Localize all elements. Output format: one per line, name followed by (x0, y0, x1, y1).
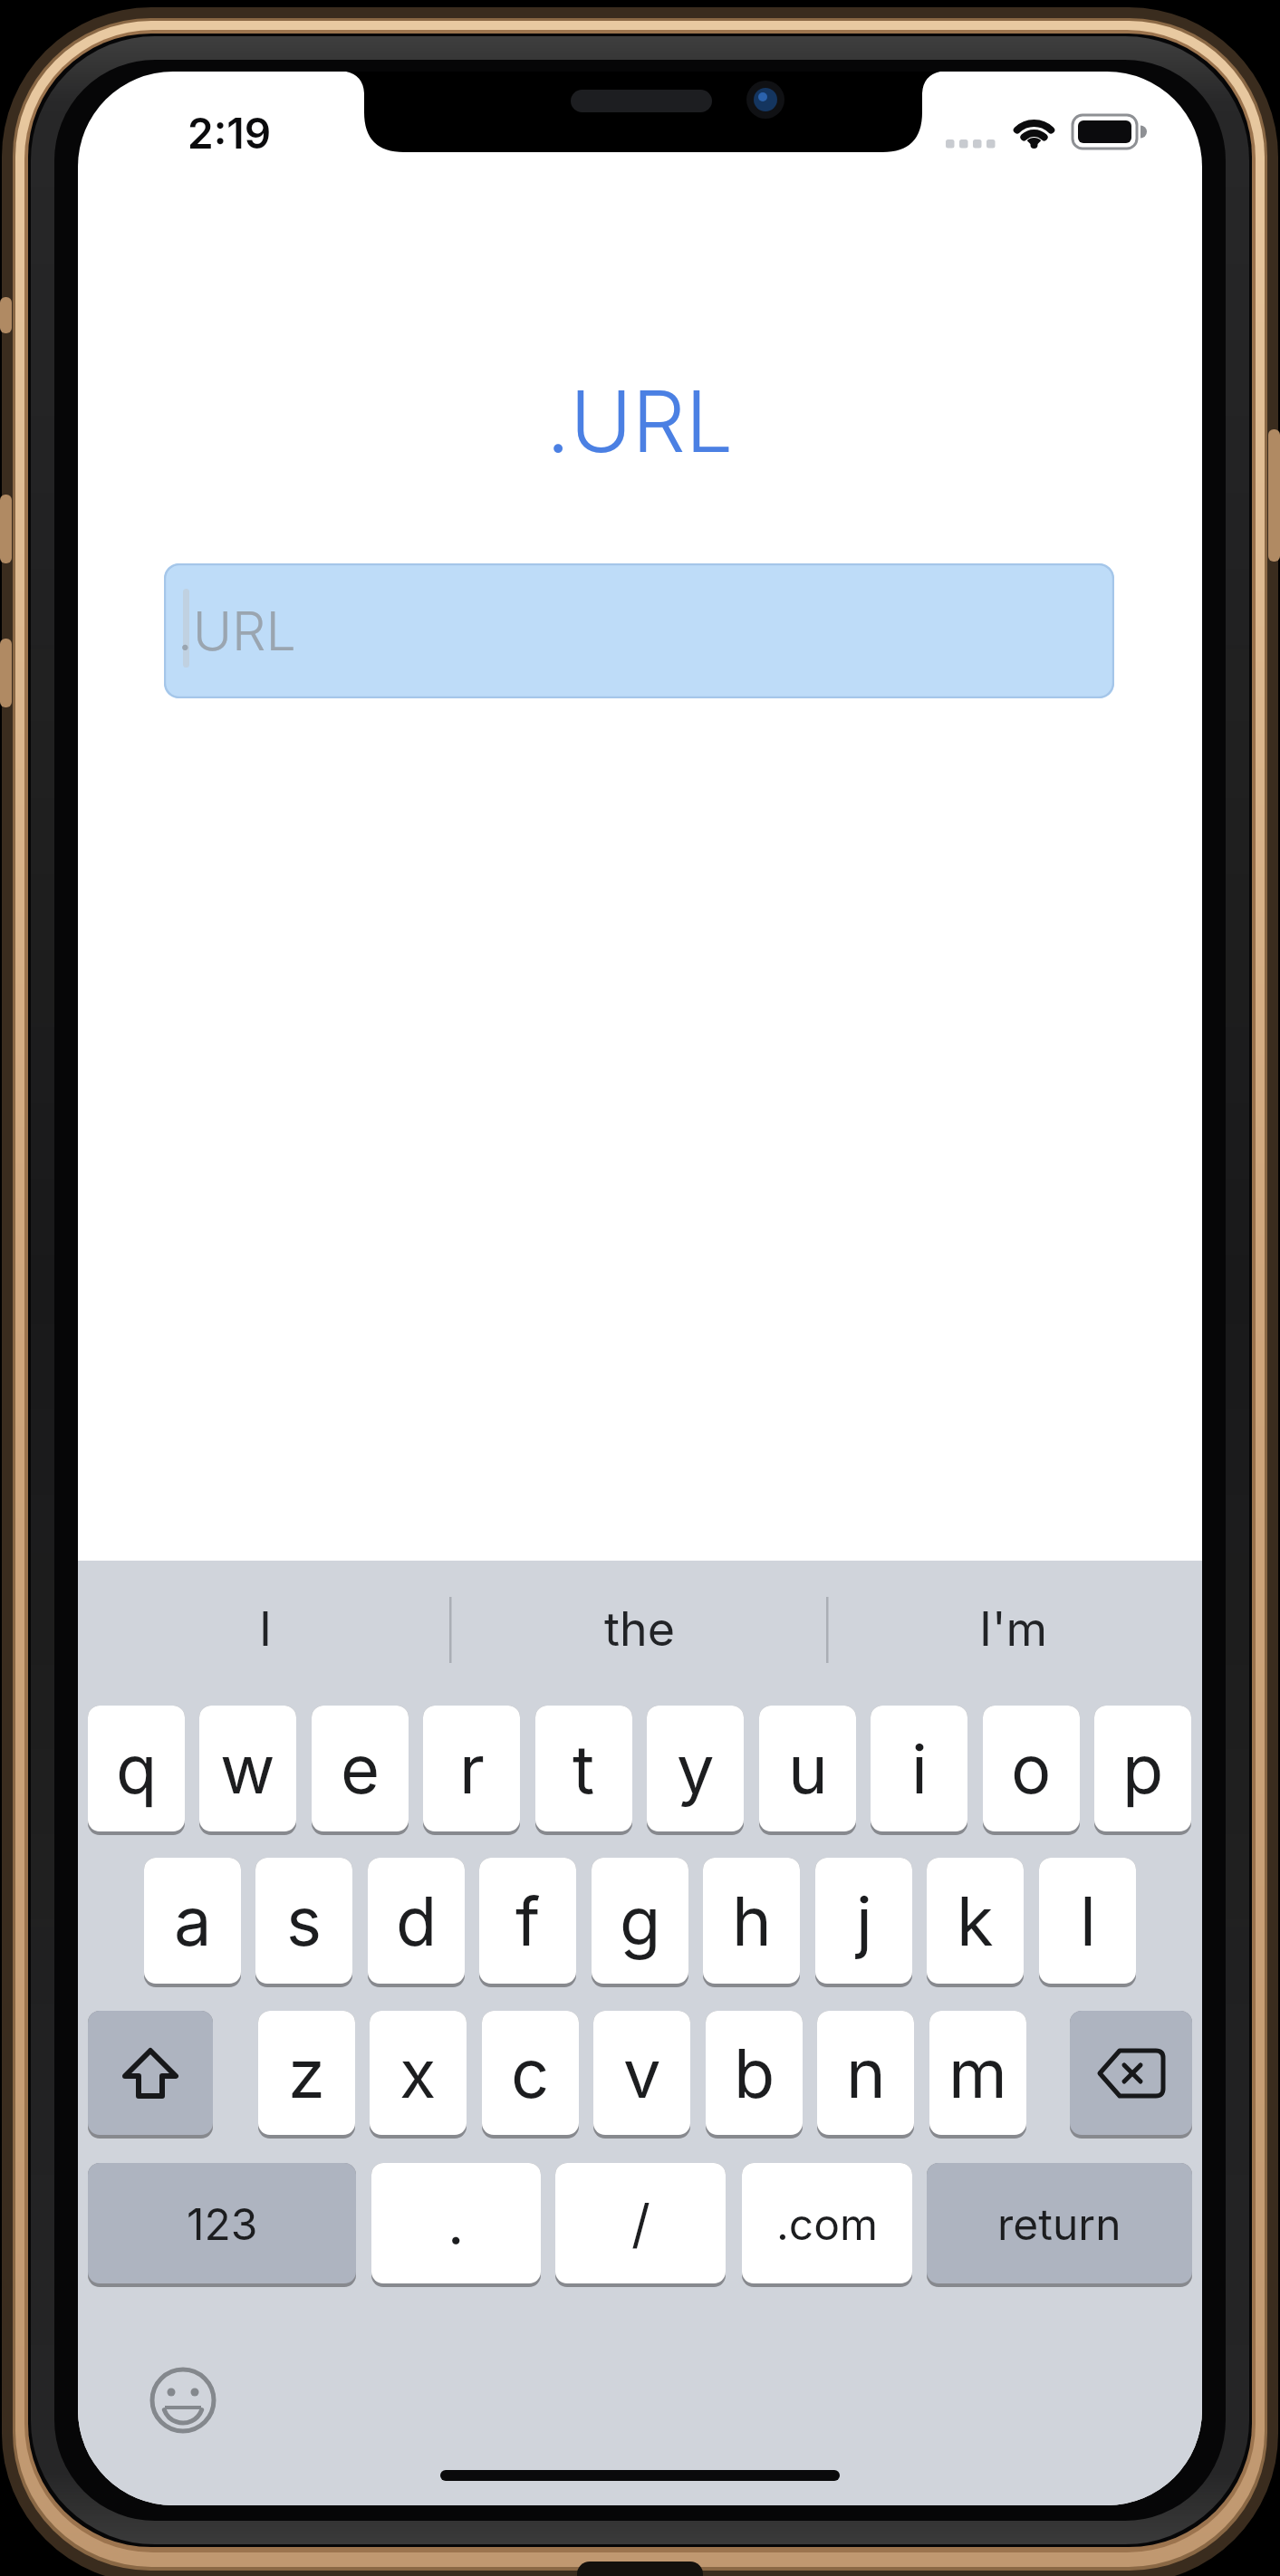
button[interactable]: the (476, 1588, 803, 1669)
button[interactable]: I'm (851, 1588, 1177, 1669)
staticText: y (677, 1728, 715, 1810)
button[interactable]: a (144, 1858, 241, 1984)
staticText: x (399, 2033, 437, 2114)
button[interactable]: k (927, 1858, 1024, 1984)
button[interactable] (149, 2367, 217, 2434)
staticText: 123 (187, 2197, 258, 2250)
button[interactable]: r (423, 1706, 520, 1831)
button[interactable]: d (368, 1858, 465, 1984)
staticText: r (459, 1728, 485, 1810)
staticText: I'm (979, 1600, 1048, 1658)
staticText: a (174, 1880, 212, 1962)
staticText: f (515, 1880, 541, 1962)
staticText: .com (776, 2197, 879, 2250)
button[interactable]: b (706, 2011, 803, 2135)
staticText: p (1122, 1728, 1164, 1810)
staticText: v (623, 2033, 661, 2114)
button[interactable]: u (759, 1706, 856, 1831)
button[interactable]: o (983, 1706, 1080, 1831)
button[interactable]: p (1094, 1706, 1191, 1831)
staticText: .URL (178, 599, 296, 663)
staticText: t (573, 1728, 595, 1810)
staticText: m (948, 2033, 1007, 2114)
button[interactable]: .com (742, 2163, 912, 2283)
button[interactable]: 123 (88, 2163, 356, 2283)
button[interactable]: y (647, 1706, 744, 1831)
button[interactable]: I (102, 1588, 428, 1669)
staticText: o (1011, 1728, 1052, 1810)
button[interactable]: t (535, 1706, 632, 1831)
staticText: s (286, 1880, 322, 1962)
button[interactable] (88, 2011, 213, 2135)
staticText: return (997, 2197, 1121, 2250)
button[interactable] (1070, 2011, 1192, 2135)
button[interactable]: i (871, 1706, 967, 1831)
button[interactable]: f (479, 1858, 576, 1984)
staticText: d (396, 1880, 438, 1962)
staticText: .URL (546, 370, 734, 470)
button[interactable]: x (370, 2011, 467, 2135)
button[interactable]: return (927, 2163, 1192, 2283)
button[interactable]: s (255, 1858, 352, 1984)
staticText: g (620, 1880, 661, 1962)
staticText: w (220, 1728, 275, 1810)
button[interactable]: v (593, 2011, 690, 2135)
button[interactable]: .URL (164, 563, 1114, 698)
staticText: b (734, 2033, 775, 2114)
button[interactable]: h (703, 1858, 800, 1984)
staticText: e (341, 1728, 380, 1810)
button[interactable]: . (371, 2163, 541, 2283)
staticText: z (288, 2033, 325, 2114)
staticText: the (604, 1600, 676, 1658)
staticText: I (259, 1600, 272, 1658)
button[interactable]: w (199, 1706, 296, 1831)
staticText: l (1080, 1880, 1096, 1962)
staticText: h (732, 1880, 772, 1962)
staticText: c (511, 2033, 550, 2114)
button[interactable]: l (1039, 1858, 1136, 1984)
button[interactable]: / (555, 2163, 726, 2283)
staticText: n (846, 2033, 886, 2114)
staticText: u (788, 1728, 828, 1810)
button[interactable]: q (88, 1706, 185, 1831)
staticText: / (631, 2192, 650, 2255)
staticText: k (957, 1880, 994, 1962)
staticText: j (856, 1880, 872, 1962)
button[interactable]: c (482, 2011, 579, 2135)
button[interactable]: m (929, 2011, 1026, 2135)
button[interactable]: z (258, 2011, 355, 2135)
button[interactable]: g (592, 1858, 688, 1984)
button[interactable]: n (817, 2011, 914, 2135)
staticText: i (911, 1728, 928, 1810)
button[interactable]: j (815, 1858, 912, 1984)
staticText: 2:19 (188, 108, 272, 155)
staticText: q (116, 1728, 158, 1810)
button[interactable]: e (312, 1706, 409, 1831)
staticText: . (448, 2188, 465, 2258)
